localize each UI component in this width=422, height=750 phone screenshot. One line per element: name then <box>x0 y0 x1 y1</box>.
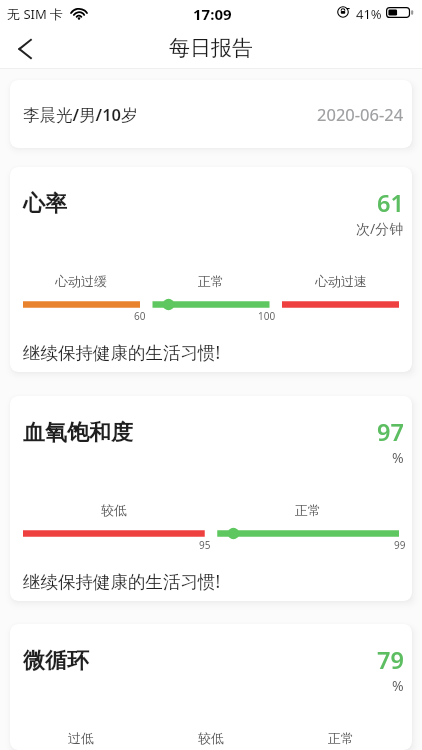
staticText: % <box>392 448 404 467</box>
staticText: 每日报告 <box>169 35 253 61</box>
staticText: 微循环 <box>23 647 89 675</box>
staticText: 较低 <box>198 730 224 746</box>
staticText: 次/分钟 <box>356 219 404 238</box>
staticText: 继续保持健康的生活习惯! <box>23 340 221 364</box>
staticText: 血氧饱和度 <box>23 419 133 447</box>
staticText: % <box>392 676 404 695</box>
staticText: 2020-06-24 <box>317 103 404 125</box>
staticText: 41% <box>356 5 382 23</box>
staticText: 心率 <box>23 190 67 218</box>
staticText: 60 <box>134 309 146 323</box>
staticText: 继续保持健康的生活习惯! <box>23 569 221 593</box>
staticText: 李晨光/男/10岁 <box>23 103 138 126</box>
staticText: 较低 <box>101 502 127 518</box>
staticText: 过低 <box>68 730 94 746</box>
staticText: 79 <box>377 644 404 676</box>
staticText: 正常 <box>198 273 224 289</box>
staticText: 100 <box>258 309 276 323</box>
button[interactable]: Back <box>8 32 42 66</box>
staticText: 61 <box>377 187 404 219</box>
staticText: 97 <box>377 416 404 448</box>
staticText: 17:09 <box>193 4 232 24</box>
button[interactable]: 李晨光/男/10岁 <box>10 80 412 148</box>
staticText: 95 <box>199 538 211 552</box>
staticText: 正常 <box>295 502 321 518</box>
staticText: 无 SIM 卡 <box>7 5 64 23</box>
staticText: 心动过缓 <box>55 273 107 289</box>
staticText: 正常 <box>328 730 354 746</box>
staticText: 99 <box>394 538 406 552</box>
staticText: 心动过速 <box>315 273 367 289</box>
